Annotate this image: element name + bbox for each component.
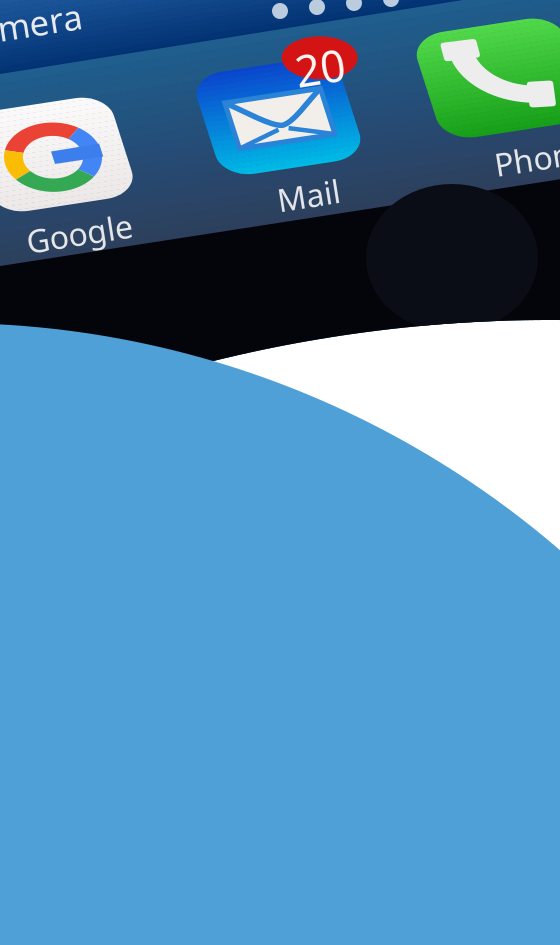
staticText: Phone xyxy=(494,136,560,178)
staticText: mera xyxy=(0,0,82,45)
staticText: Google xyxy=(26,212,133,254)
staticText: Mail xyxy=(277,174,340,216)
staticText: 20 xyxy=(295,38,345,96)
